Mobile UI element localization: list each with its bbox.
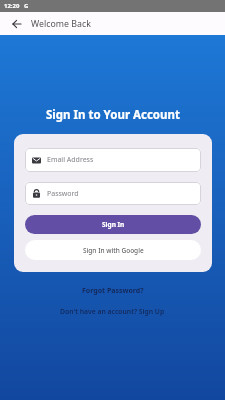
staticText: Sign In to Your Account (46, 107, 180, 123)
button[interactable]: Sign In with Google (25, 240, 201, 260)
staticText: Don't have an account? Sign Up (60, 307, 165, 316)
staticText: Sign In with Google (83, 246, 144, 255)
staticText: Forgot Password? (82, 286, 144, 296)
staticText: 12:20 (4, 2, 20, 10)
button[interactable]: Forgot Password? (82, 286, 144, 296)
staticText: G (24, 2, 29, 10)
button[interactable]: Sign In (25, 215, 201, 234)
button[interactable] (13, 20, 21, 28)
button[interactable]: Email Address (25, 148, 201, 172)
staticText: Password (47, 189, 79, 199)
staticText: Email Address (47, 155, 94, 165)
button[interactable]: Don't have an account? Sign Up (60, 307, 165, 316)
button[interactable]: Welcome Back (0, 12, 225, 35)
staticText: Welcome Back (31, 18, 91, 30)
staticText: Sign In (102, 220, 125, 229)
button[interactable]: Password (25, 182, 201, 205)
